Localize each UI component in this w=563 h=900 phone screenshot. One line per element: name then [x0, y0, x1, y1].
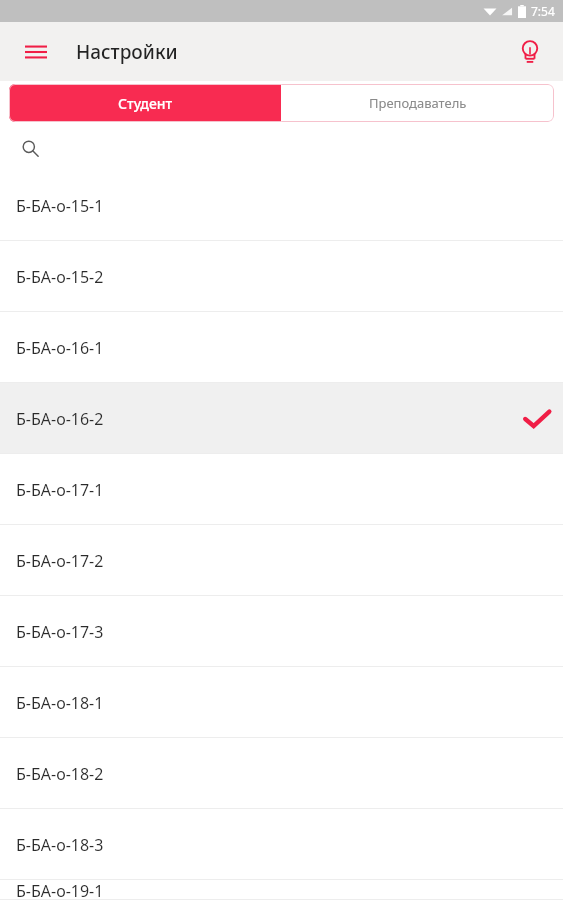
button[interactable]: Б-БА-о-18-2	[0, 738, 563, 809]
staticText: Б-БА-о-17-1	[16, 479, 104, 501]
button[interactable]: Menu	[14, 30, 58, 74]
button[interactable]: Б-БА-о-16-2	[0, 383, 563, 454]
staticText: 7:54	[531, 3, 555, 19]
button[interactable]: Б-БА-о-17-1	[0, 454, 563, 525]
staticText: Б-БА-о-18-1	[16, 692, 104, 714]
staticText: Преподаватель	[369, 94, 467, 112]
button[interactable]: Б-БА-о-18-1	[0, 667, 563, 738]
button[interactable]: Б-БА-о-17-3	[0, 596, 563, 667]
staticText: Б-БА-о-19-1	[16, 880, 104, 900]
button[interactable]: Theme	[507, 29, 553, 75]
staticText: Б-БА-о-18-3	[16, 834, 104, 856]
button[interactable]: Б-БА-о-19-1	[0, 880, 563, 900]
staticText: Б-БА-о-15-1	[16, 195, 104, 217]
staticText: Б-БА-о-17-2	[16, 550, 104, 572]
staticText: Б-БА-о-18-2	[16, 763, 104, 785]
button[interactable]: Б-БА-о-17-2	[0, 525, 563, 596]
button[interactable]: Б-БА-о-16-1	[0, 312, 563, 383]
button[interactable]: Б-БА-о-15-1	[0, 170, 563, 241]
staticText: Б-БА-о-15-2	[16, 266, 104, 288]
staticText: Б-БА-о-16-2	[16, 408, 104, 430]
staticText: Настройки	[76, 39, 178, 65]
button[interactable]: Студент	[9, 84, 281, 122]
staticText: Б-БА-о-16-1	[16, 337, 104, 359]
staticText: Б-БА-о-17-3	[16, 621, 104, 643]
button[interactable]: Search	[14, 132, 46, 164]
staticText: Студент	[118, 94, 173, 113]
button[interactable]: Б-БА-о-18-3	[0, 809, 563, 880]
button[interactable]: Б-БА-о-15-2	[0, 241, 563, 312]
button[interactable]: Преподаватель	[281, 84, 554, 122]
